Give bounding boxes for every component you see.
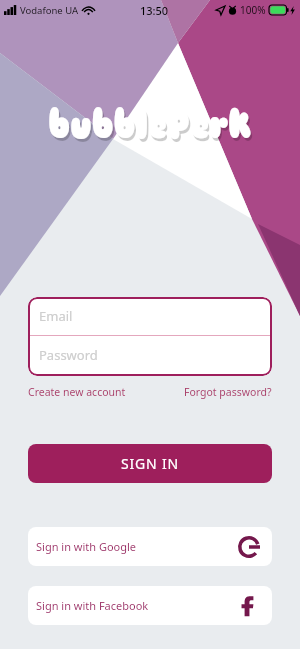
staticText: Password [39,346,98,364]
button[interactable]: Password [39,336,272,374]
staticText: bubblePerk [50,104,253,153]
staticText: SIGN IN [121,454,179,473]
staticText: 13:50 [140,3,169,18]
button[interactable]: Sign in with Facebook [28,586,272,625]
staticText: bubblePerk [48,101,252,150]
staticText: Sign in with Facebook [36,598,149,613]
staticText: Vodafone UA [20,4,79,17]
button[interactable]: Create new account [28,385,126,399]
staticText: 100% [240,3,266,17]
button[interactable]: Forgot password? [184,385,272,399]
button[interactable]: Email [39,297,272,335]
staticText: Sign in with Google [36,539,137,554]
button[interactable]: Sign in with Google [28,527,272,566]
button[interactable]: SIGN IN [28,444,272,483]
staticText: Email [39,307,73,325]
